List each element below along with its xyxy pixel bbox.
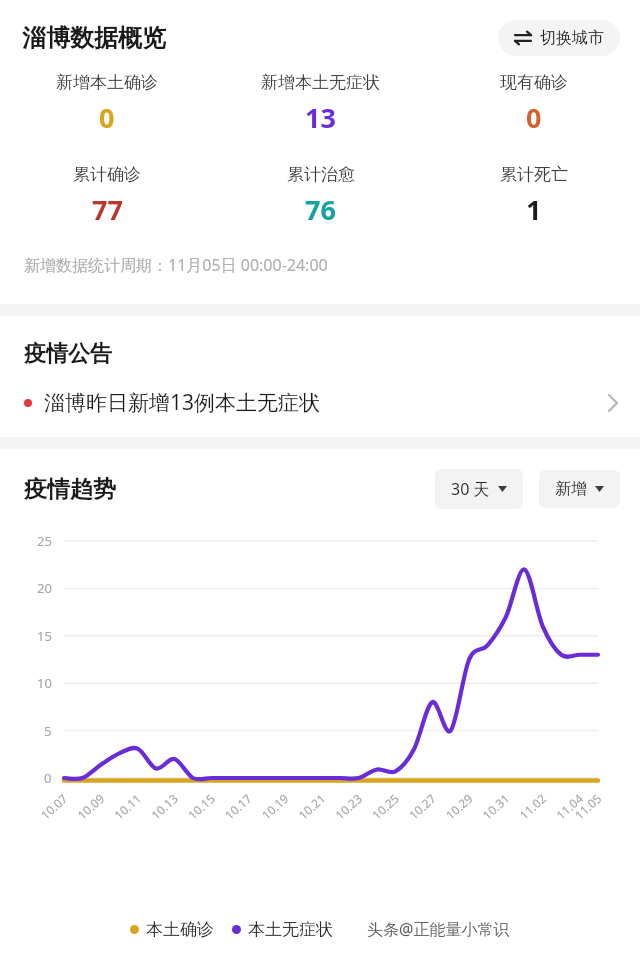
staticText: 疫情公告: [24, 340, 112, 368]
staticText: 累计治愈: [287, 164, 355, 185]
staticText: 13: [305, 99, 336, 136]
staticText: 新增本土确诊: [56, 72, 158, 93]
staticText: 疫情趋势: [24, 475, 116, 504]
staticText: 切换城市: [540, 28, 604, 48]
staticText: 头条@正能量小常识: [367, 918, 510, 940]
staticText: 累计确诊: [73, 164, 141, 185]
staticText: 0: [99, 99, 115, 136]
staticText: 累计死亡: [500, 164, 568, 185]
staticText: 0: [526, 99, 542, 136]
staticText: 淄博昨日新增13例本土无症状: [44, 388, 321, 417]
staticText: 本土确诊: [146, 919, 214, 940]
staticText: 新增本土无症状: [261, 72, 380, 93]
staticText: 1: [526, 191, 542, 228]
staticText: 76: [305, 191, 336, 228]
staticText: 77: [92, 191, 123, 228]
staticText: 本土无症状: [248, 919, 333, 940]
staticText: 新增: [555, 479, 587, 499]
staticText: 淄博数据概览: [22, 23, 166, 53]
button[interactable]: 30 天: [435, 469, 523, 509]
button[interactable]: 新增: [539, 470, 620, 508]
staticText: 30 天: [451, 478, 490, 500]
button[interactable]: 切换城市: [498, 20, 620, 56]
staticText: 现有确诊: [500, 72, 568, 93]
button[interactable]: 淄博昨日新增13例本土无症状: [0, 368, 640, 437]
staticText: 新增数据统计周期：11月05日 00:00-24:00: [24, 254, 328, 276]
